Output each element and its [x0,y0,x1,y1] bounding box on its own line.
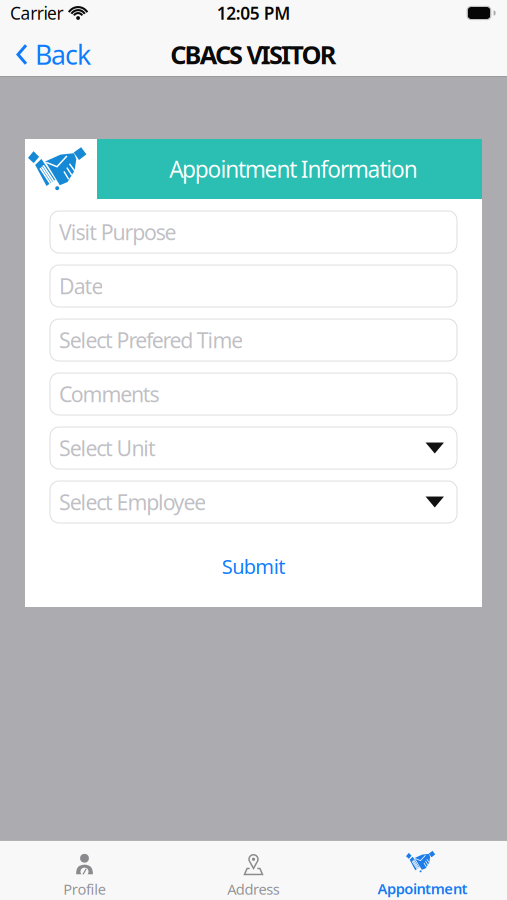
button[interactable]: Visit Purpose [50,211,457,253]
staticText: CBACS VISITOR [170,38,337,71]
button[interactable]: Appointment [338,841,507,899]
staticText: Select Unit [59,434,156,462]
staticText: 12:05 PM [217,1,290,24]
staticText: Select Prefered Time [59,326,243,354]
button[interactable]: Submit [222,553,285,580]
staticText: Comments [59,380,160,408]
button[interactable]: Select Employee [50,481,457,523]
staticText: Submit [222,553,285,580]
staticText: Carrier [10,1,64,24]
staticText: Back [35,37,91,72]
staticText: Appointment Information [169,154,418,184]
staticText: Address [227,879,280,899]
staticText: Appointment [377,879,467,898]
button[interactable]: Back [0,37,91,72]
button[interactable]: Date [50,265,457,307]
staticText: Date [59,272,103,300]
button[interactable]: Profile [0,841,169,899]
staticText: Profile [63,879,106,899]
staticText: Visit Purpose [59,218,177,246]
button[interactable]: Select Unit [50,427,457,469]
button[interactable]: Address [169,841,338,899]
button[interactable]: Comments [50,373,457,415]
button[interactable]: Select Prefered Time [50,319,457,361]
staticText: Select Employee [59,488,206,516]
